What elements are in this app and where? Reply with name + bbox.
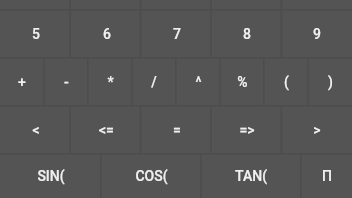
staticText: < [32,122,40,138]
button[interactable]: COS( [101,154,201,198]
staticText: => [239,122,255,138]
button[interactable]: <= [71,106,142,154]
staticText: > [313,122,321,138]
staticText: ( [284,74,289,90]
button[interactable]: ( [264,58,308,106]
staticText: 9 [313,26,321,42]
button[interactable]: ) [308,58,352,106]
button[interactable]: TAN( [201,154,301,198]
button[interactable]: => [212,106,282,154]
button[interactable]: % [220,58,264,106]
button[interactable]: < [0,106,71,154]
button[interactable]: ^ [176,58,220,106]
button[interactable]: 8 [212,10,282,58]
staticText: % [237,74,248,90]
button[interactable]: > [282,106,352,154]
button[interactable]: * [88,58,132,106]
button[interactable]: 5 [0,10,71,58]
button[interactable]: - [44,58,88,106]
staticText: ) [328,74,333,90]
button[interactable]: 9 [282,10,352,58]
staticText: Π [322,168,332,184]
staticText: TAN( [235,168,267,184]
staticText: COS( [135,168,168,184]
staticText: ^ [195,74,202,90]
button[interactable]: SIN( [0,154,101,198]
staticText: / [151,74,157,90]
button[interactable]: + [0,58,44,106]
staticText: - [64,74,69,90]
staticText: + [18,74,26,90]
staticText: <= [99,122,114,138]
button[interactable]: / [132,58,176,106]
staticText: 6 [103,26,111,42]
button[interactable]: 6 [71,10,142,58]
staticText: 8 [243,26,251,42]
staticText: * [107,74,114,90]
staticText: = [173,122,181,138]
button[interactable]: = [142,106,212,154]
staticText: SIN( [37,168,65,184]
button[interactable]: Π [301,154,352,198]
staticText: 5 [32,26,40,42]
button[interactable]: 7 [142,10,212,58]
staticText: 7 [173,26,181,42]
